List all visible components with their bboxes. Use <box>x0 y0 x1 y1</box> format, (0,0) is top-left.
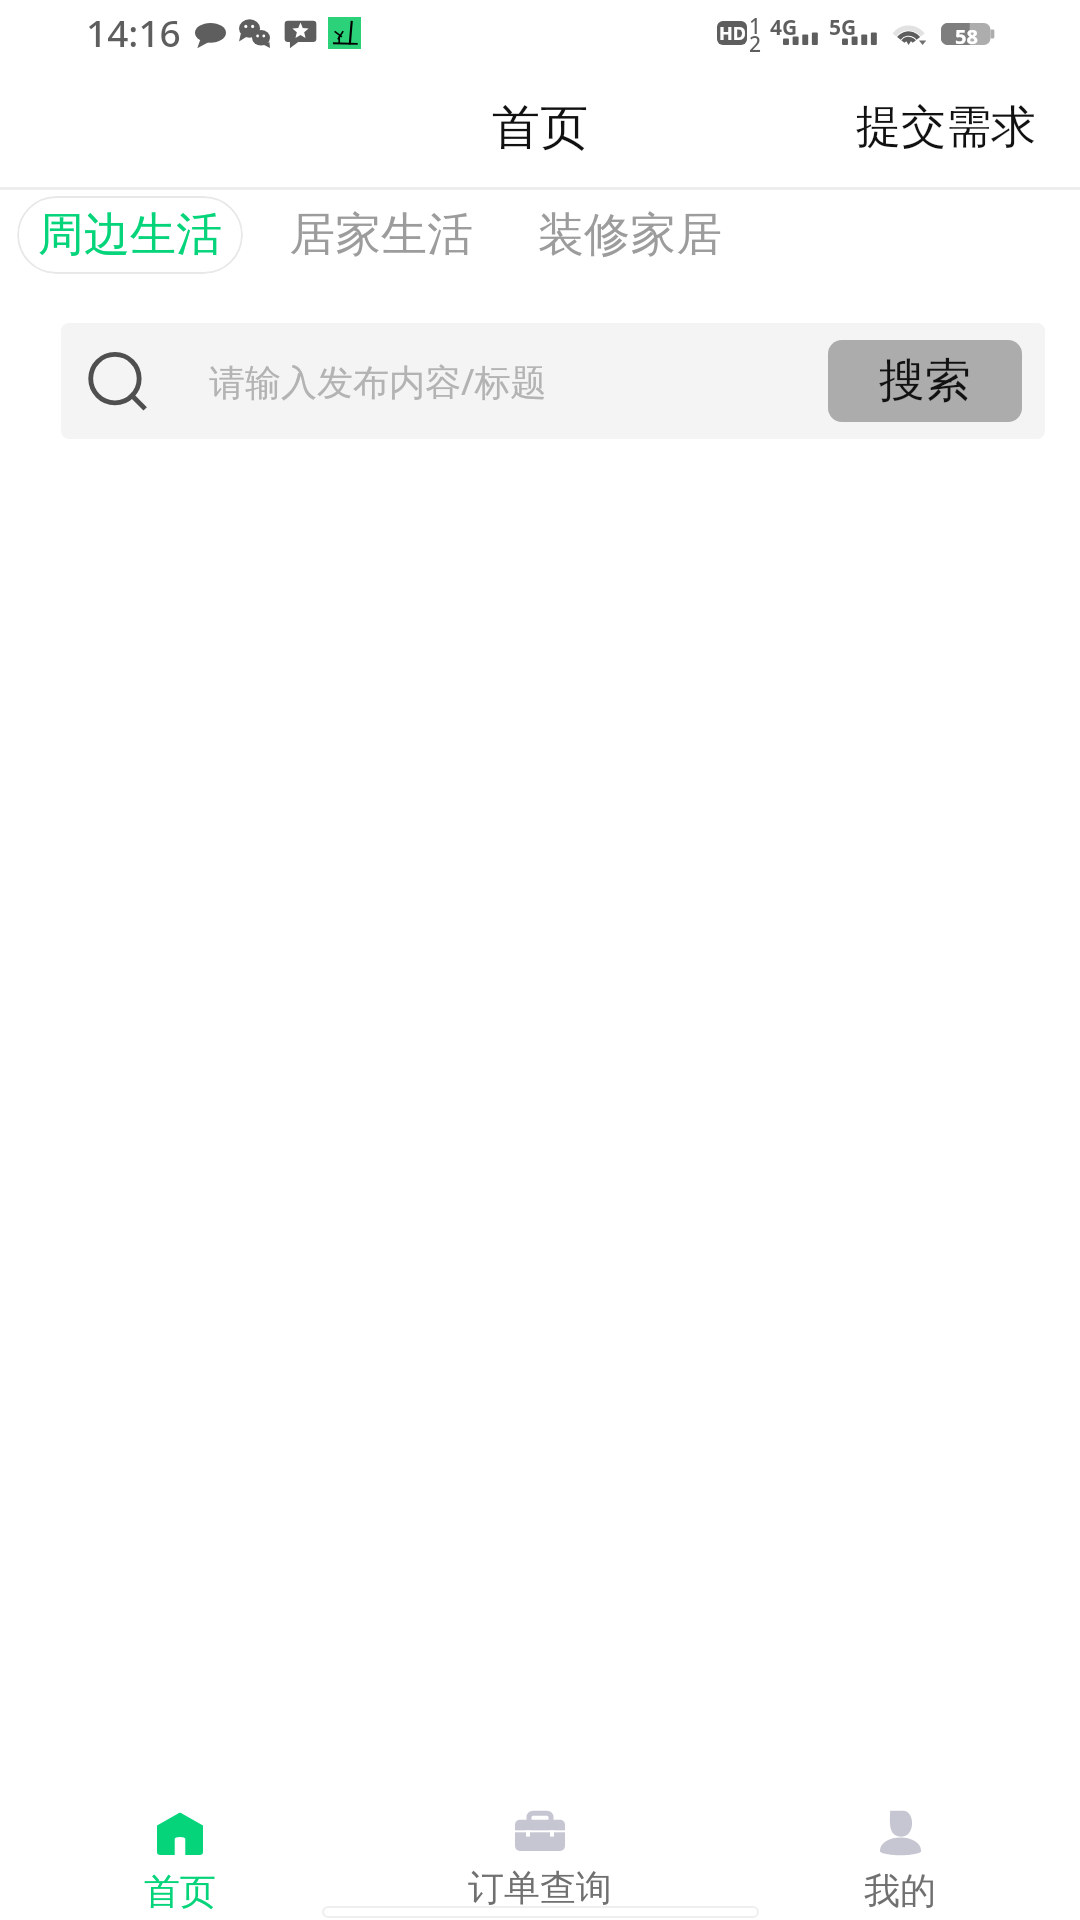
staticText: 首页 <box>492 98 588 158</box>
button[interactable]: 周边生活 <box>17 196 243 274</box>
button[interactable]: 居家生活 <box>269 196 493 274</box>
button[interactable]: Search <box>61 323 861 439</box>
staticText: 首页 <box>144 1869 216 1914</box>
staticText: 装修家居 <box>538 206 722 264</box>
button[interactable]: 提交需求 <box>812 77 1080 178</box>
button[interactable]: 装修家居 <box>518 196 742 274</box>
staticText: 1 <box>749 12 762 41</box>
other: Search <box>91 357 148 405</box>
staticText: 请输入发布内容/标题 <box>209 357 547 406</box>
button[interactable]: 我的 <box>720 1799 1080 1919</box>
staticText: 14:16 <box>86 7 181 57</box>
staticText: 搜索 <box>879 352 971 410</box>
staticText: 58 <box>955 23 978 45</box>
button[interactable]: 搜索 <box>828 340 1022 422</box>
staticText: 5G <box>829 13 857 42</box>
staticText: 提交需求 <box>856 99 1036 156</box>
staticText: 我的 <box>864 1868 936 1913</box>
staticText: 周边生活 <box>38 206 222 264</box>
staticText: 4G <box>770 13 798 42</box>
staticText: 订单查询 <box>468 1865 612 1910</box>
button[interactable]: 首页 <box>0 1799 360 1919</box>
staticText: HD <box>719 21 746 45</box>
staticText: 居家生活 <box>289 206 473 264</box>
button[interactable]: 订单查询 <box>360 1799 720 1919</box>
staticText: 2 <box>749 30 762 59</box>
